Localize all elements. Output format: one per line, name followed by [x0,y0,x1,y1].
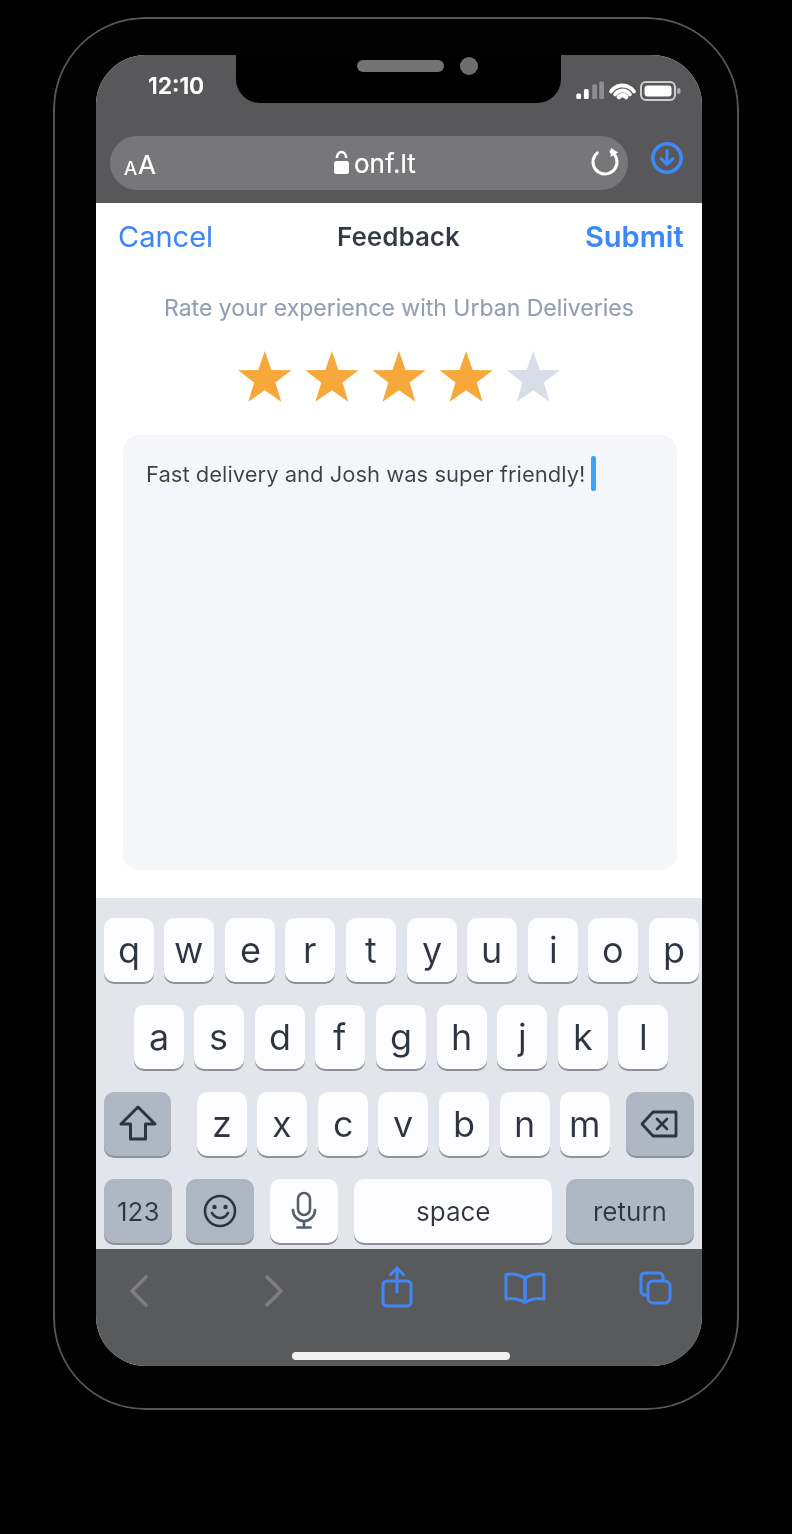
staticText: n [514,1102,536,1146]
button[interactable]: return [566,1179,694,1243]
button[interactable] [637,1271,675,1307]
staticText: p [663,928,686,972]
button[interactable]: z [197,1092,247,1156]
button[interactable]: r [285,918,335,982]
staticText: onf.lt [354,148,416,179]
button[interactable]: c [318,1092,368,1156]
staticText: e [240,928,261,972]
button[interactable] [432,346,494,412]
button[interactable]: e [225,918,275,982]
staticText: w [174,928,204,972]
button[interactable] [365,346,427,412]
staticText: z [212,1102,232,1146]
button[interactable]: i [528,918,578,982]
staticText: c [333,1102,354,1146]
staticText: 12:10 [148,72,205,100]
staticText: 123 [117,1196,160,1227]
staticText: b [453,1102,476,1146]
staticText: Feedback [337,221,460,252]
staticText: i [549,928,558,972]
button[interactable]: d [255,1005,305,1069]
button[interactable]: v [378,1092,428,1156]
button[interactable]: j [497,1005,547,1069]
staticText: a [149,1015,170,1059]
staticText: Rate your experience with Urban Deliveri… [164,294,634,322]
staticText: A [138,149,156,180]
button[interactable]: s [194,1005,244,1069]
button[interactable] [504,1271,546,1307]
button[interactable]: space [354,1179,552,1243]
staticText: A [124,157,138,180]
staticText: u [481,928,503,972]
button[interactable]: t [346,918,396,982]
staticText: t [365,928,377,972]
button[interactable] [651,142,683,174]
button[interactable]: u [467,918,517,982]
staticText: Cancel [118,219,214,254]
button[interactable] [117,1269,161,1313]
staticText: s [209,1015,229,1059]
button[interactable] [231,346,293,412]
staticText: v [393,1102,414,1146]
button[interactable]: a [134,1005,184,1069]
button[interactable] [499,346,561,412]
staticText: d [269,1015,292,1059]
staticText: Fast delivery and Josh was super friendl… [146,461,586,488]
button[interactable]: q [104,918,154,982]
button[interactable]: Cancel [118,218,228,254]
button[interactable] [252,1269,296,1313]
staticText: l [639,1015,648,1059]
button[interactable] [379,1265,415,1309]
staticText: f [333,1015,347,1059]
button[interactable] [270,1179,338,1243]
button[interactable]: p [649,918,699,982]
staticText: m [569,1102,601,1146]
button[interactable]: x [257,1092,307,1156]
staticText: return [593,1196,667,1227]
button[interactable] [298,346,360,412]
button[interactable]: l [618,1005,668,1069]
staticText: o [602,928,624,972]
staticText: h [451,1015,473,1059]
button[interactable]: h [437,1005,487,1069]
staticText: y [422,928,443,972]
staticText: g [390,1015,413,1059]
button[interactable]: 123 [104,1179,172,1243]
button[interactable]: k [558,1005,608,1069]
button[interactable] [123,435,677,870]
staticText: k [573,1015,593,1059]
button[interactable]: b [439,1092,489,1156]
button[interactable] [110,136,628,190]
staticText: space [416,1196,491,1227]
staticText: x [272,1102,292,1146]
button[interactable]: n [500,1092,550,1156]
button[interactable]: Submit [536,218,684,254]
button[interactable] [104,1092,171,1156]
button[interactable] [626,1092,694,1156]
button[interactable] [186,1179,254,1243]
staticText: r [303,928,317,972]
button[interactable]: y [407,918,457,982]
button[interactable]: g [376,1005,426,1069]
button[interactable]: m [560,1092,610,1156]
button[interactable]: f [315,1005,365,1069]
button[interactable]: o [588,918,638,982]
staticText: q [118,928,141,972]
staticText: j [518,1015,527,1059]
staticText: Submit [585,219,684,254]
button[interactable]: w [164,918,214,982]
